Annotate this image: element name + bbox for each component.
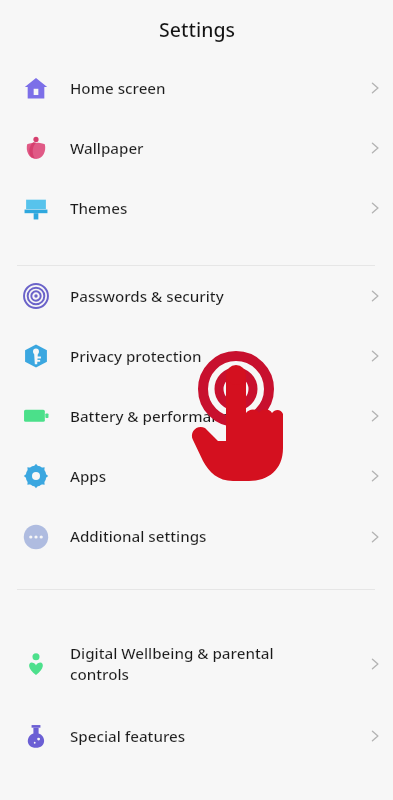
button[interactable]: Home screen [0, 58, 393, 118]
button[interactable]: Wallpaper [0, 118, 393, 178]
staticText: Themes [70, 198, 347, 219]
staticText: Digital Wellbeing & parental controls [70, 643, 347, 685]
button[interactable]: Special features [0, 706, 393, 766]
staticText: Privacy protection [70, 346, 347, 367]
button[interactable]: Digital Wellbeing & parental controls [0, 622, 393, 706]
staticText: Additional settings [70, 526, 347, 547]
button[interactable]: Themes [0, 178, 393, 238]
button[interactable]: Privacy protection [0, 326, 393, 386]
button[interactable]: Apps [0, 446, 393, 506]
staticText: Passwords & security [70, 286, 347, 307]
button[interactable]: Passwords & security [0, 266, 393, 326]
button[interactable]: Battery & performance [0, 386, 393, 446]
staticText: Apps [70, 466, 347, 487]
staticText: Battery & performance [70, 406, 347, 427]
button[interactable]: Additional settings [0, 506, 393, 567]
staticText: Special features [70, 726, 347, 747]
staticText: Home screen [70, 78, 347, 99]
staticText: Settings [159, 16, 235, 43]
staticText: Wallpaper [70, 138, 347, 159]
